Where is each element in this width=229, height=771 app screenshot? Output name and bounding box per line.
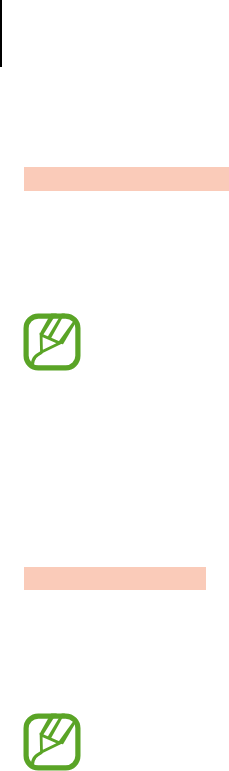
button[interactable]: S Note — [23, 313, 83, 373]
button[interactable]: S Note — [23, 713, 83, 771]
